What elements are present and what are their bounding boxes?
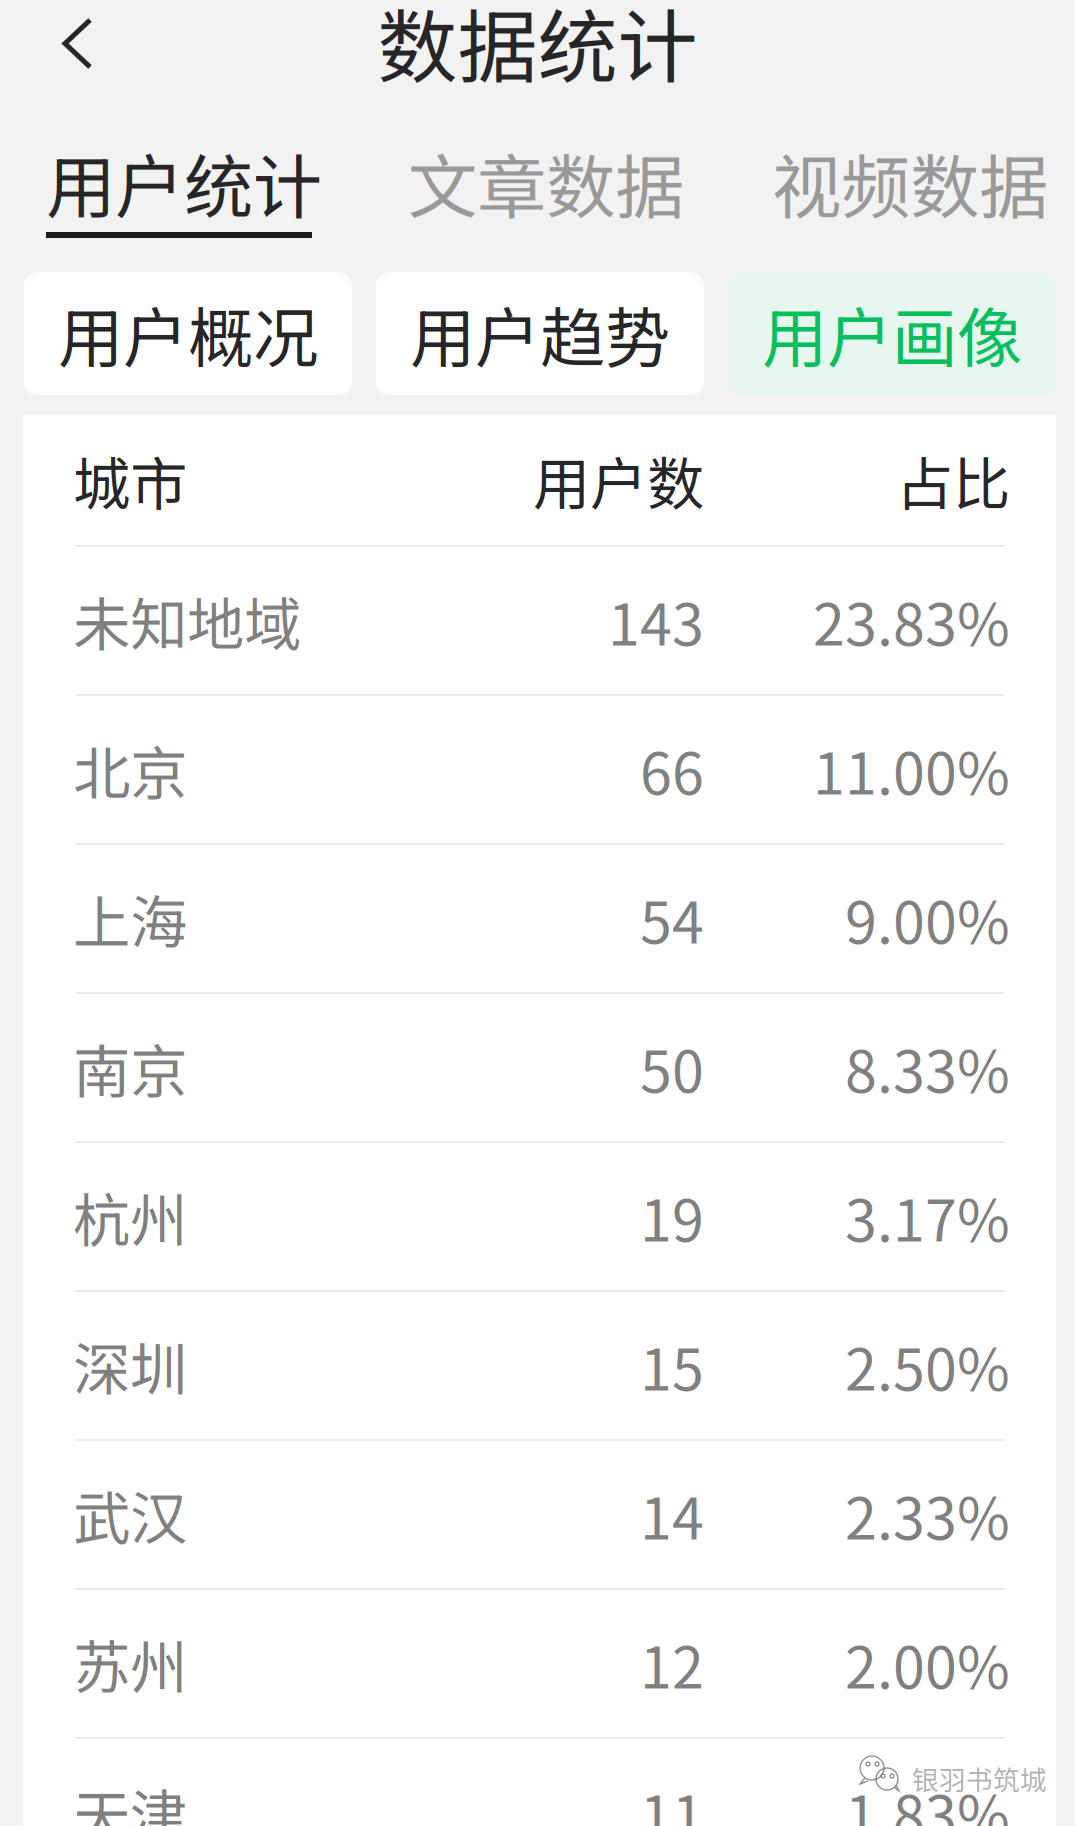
staticText: 深圳: [73, 1324, 187, 1407]
staticText: 15: [640, 1324, 704, 1407]
staticText: 8.33%: [845, 1026, 1010, 1109]
staticText: 11.00%: [813, 728, 1010, 811]
button[interactable]: 用户统计: [46, 132, 322, 252]
staticText: 50: [640, 1026, 704, 1109]
staticText: 54: [640, 877, 704, 960]
staticText: 占比: [896, 438, 1010, 521]
staticText: 12: [640, 1622, 704, 1705]
staticText: 143: [608, 579, 704, 662]
staticText: 用户数: [533, 438, 704, 521]
staticText: 视频数据: [772, 132, 1048, 232]
staticText: 用户统计: [46, 132, 322, 232]
staticText: 2.00%: [845, 1622, 1010, 1705]
staticText: 银羽书筑城: [912, 1759, 1047, 1798]
staticText: 23.83%: [813, 579, 1010, 662]
staticText: 未知地域: [73, 579, 301, 662]
staticText: 南京: [73, 1026, 187, 1109]
staticText: 天津: [73, 1771, 187, 1826]
staticText: 杭州: [73, 1175, 187, 1258]
staticText: 2.33%: [845, 1473, 1010, 1556]
staticText: 3.17%: [845, 1175, 1010, 1258]
staticText: 14: [640, 1473, 704, 1556]
staticText: 文章数据: [408, 132, 684, 232]
staticText: 19: [640, 1175, 704, 1258]
staticText: 城市: [73, 438, 187, 521]
button[interactable]: 用户概况: [24, 272, 352, 395]
staticText: 上海: [73, 877, 187, 960]
staticText: 11: [640, 1771, 704, 1826]
staticText: 用户概况: [58, 286, 318, 381]
button[interactable]: 用户趋势: [376, 272, 704, 395]
button[interactable]: 用户画像: [728, 272, 1056, 395]
staticText: 2.50%: [845, 1324, 1010, 1407]
staticText: 9.00%: [845, 877, 1010, 960]
staticText: 苏州: [73, 1622, 187, 1705]
button[interactable]: 视频数据: [772, 132, 1048, 242]
button[interactable]: Back: [0, 0, 152, 88]
staticText: 数据统计: [377, 0, 697, 99]
staticText: 用户趋势: [410, 286, 670, 381]
staticText: 用户画像: [762, 286, 1022, 381]
staticText: 武汉: [73, 1473, 187, 1556]
button[interactable]: 文章数据: [408, 132, 684, 242]
staticText: 1.83%: [845, 1771, 1010, 1826]
staticText: 北京: [73, 728, 187, 811]
staticText: 66: [640, 728, 704, 811]
